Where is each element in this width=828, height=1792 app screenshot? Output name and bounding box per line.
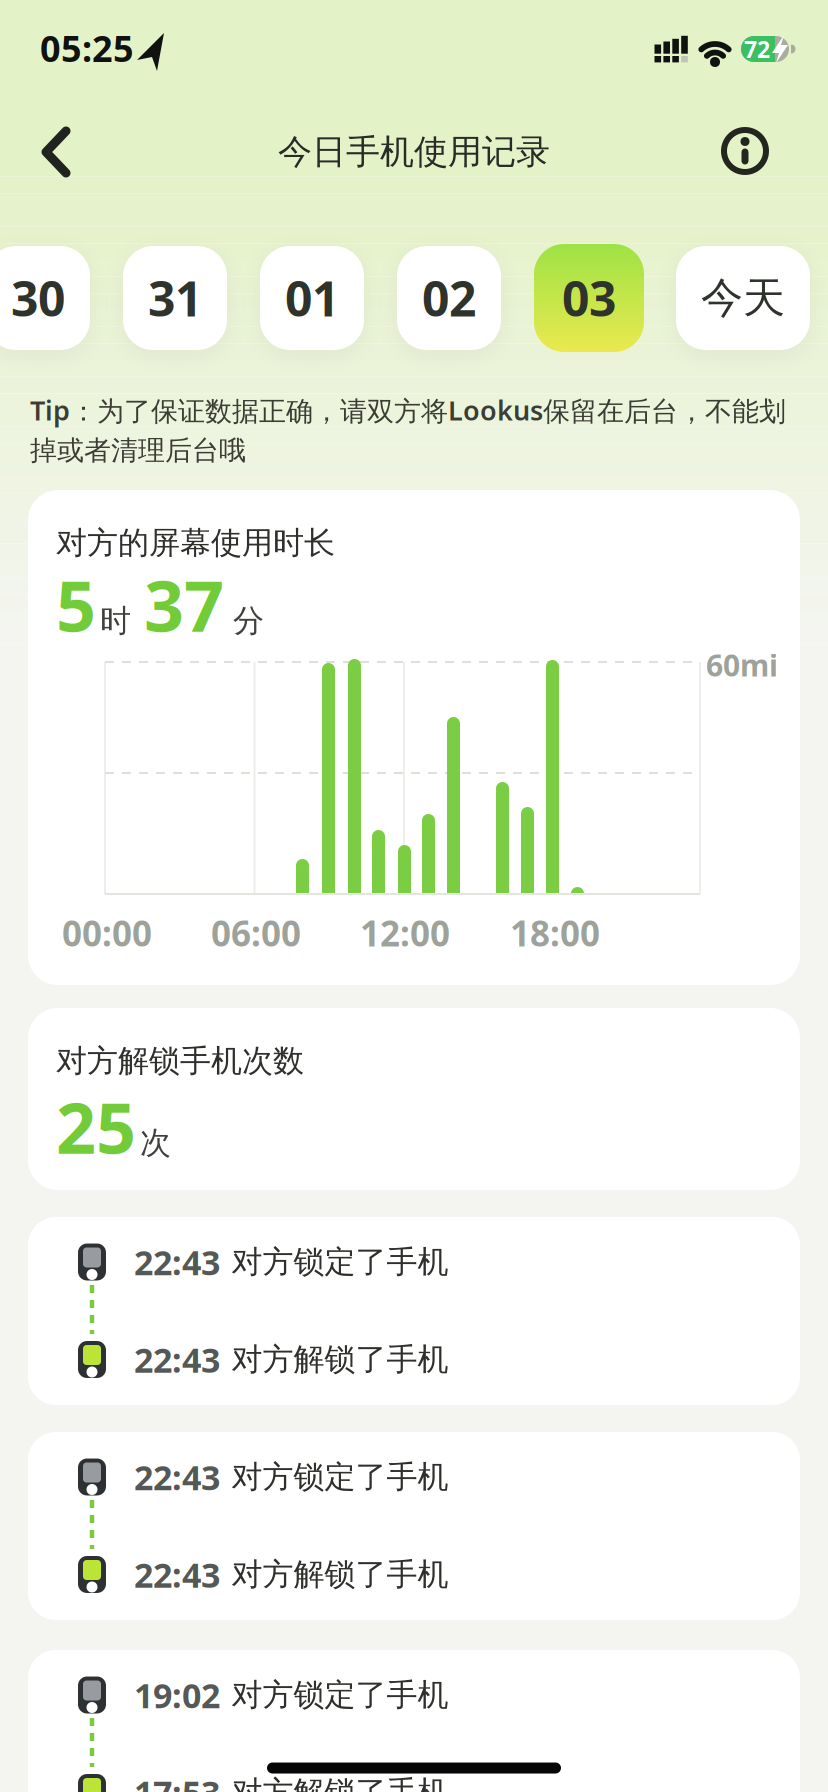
staticText: 对方锁定了手机 — [231, 1243, 448, 1281]
staticText: 02 — [422, 266, 476, 330]
staticText: 06:00 — [211, 910, 301, 956]
staticText: 对方的屏幕使用时长 — [56, 524, 335, 562]
button[interactable]: 31 — [123, 246, 227, 350]
staticText: 18:00 — [510, 910, 600, 956]
staticText: 05:25 — [40, 24, 134, 72]
staticText: 对方解锁手机次数 — [56, 1042, 304, 1080]
staticText: 22:43 — [134, 1337, 220, 1382]
button[interactable]: 01 — [260, 246, 364, 350]
staticText: 对方解锁了手机 — [231, 1340, 448, 1379]
staticText: 掉或者清理后台哦 — [30, 434, 246, 467]
staticText: 19:02 — [134, 1672, 220, 1718]
staticText: 今天 — [701, 272, 785, 324]
staticText: 22:43 — [134, 1552, 220, 1597]
staticText: 37 — [144, 558, 224, 651]
button[interactable]: 03 — [534, 244, 644, 352]
staticText: 30 — [11, 266, 65, 330]
staticText: 60min — [706, 645, 798, 685]
staticText: 次 — [140, 1124, 171, 1162]
staticText: 03 — [562, 266, 616, 330]
button[interactable]: 今天 — [676, 246, 810, 350]
staticText: 12:00 — [360, 910, 450, 956]
staticText: 5 — [56, 558, 96, 651]
staticText: 17:53 — [134, 1770, 220, 1792]
button[interactable]: 02 — [397, 246, 501, 350]
staticText: 31 — [148, 266, 202, 330]
staticText: 01 — [285, 266, 339, 330]
staticText: 对方锁定了手机 — [231, 1676, 448, 1714]
staticText: 对方解锁了手机 — [231, 1555, 448, 1594]
button[interactable] — [0, 0, 828, 1792]
staticText: 今日手机使用记录 — [278, 131, 550, 173]
staticText: 72 — [744, 34, 770, 64]
staticText: 22:43 — [134, 1239, 220, 1285]
button[interactable] — [0, 0, 110, 110]
button[interactable]: 30 — [0, 246, 90, 350]
staticText: 对方锁定了手机 — [231, 1458, 448, 1496]
staticText: 时 — [100, 602, 131, 640]
staticText: 对方解锁了手机 — [231, 1773, 448, 1792]
staticText: 00:00 — [62, 910, 152, 956]
staticText: 分 — [233, 602, 264, 640]
staticText: 22:43 — [134, 1454, 220, 1500]
staticText: Tip：为了保证数据正确，请双方将Lookus保留在后台，不能划 — [30, 392, 786, 428]
staticText: 25 — [56, 1080, 136, 1173]
